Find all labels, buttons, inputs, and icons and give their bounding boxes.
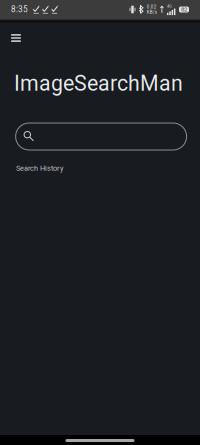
- staticText: 0.02: [147, 4, 157, 9]
- staticText: Search History: [16, 164, 63, 173]
- staticText: ImageSearchMan: [14, 71, 183, 96]
- button[interactable]: Search: [16, 123, 187, 150]
- button[interactable]: Menu: [0, 23, 32, 53]
- staticText: 82: [181, 6, 187, 13]
- staticText: 8:35: [11, 5, 28, 14]
- staticText: KB/s: [147, 9, 157, 15]
- staticText: 4G: [167, 4, 172, 9]
